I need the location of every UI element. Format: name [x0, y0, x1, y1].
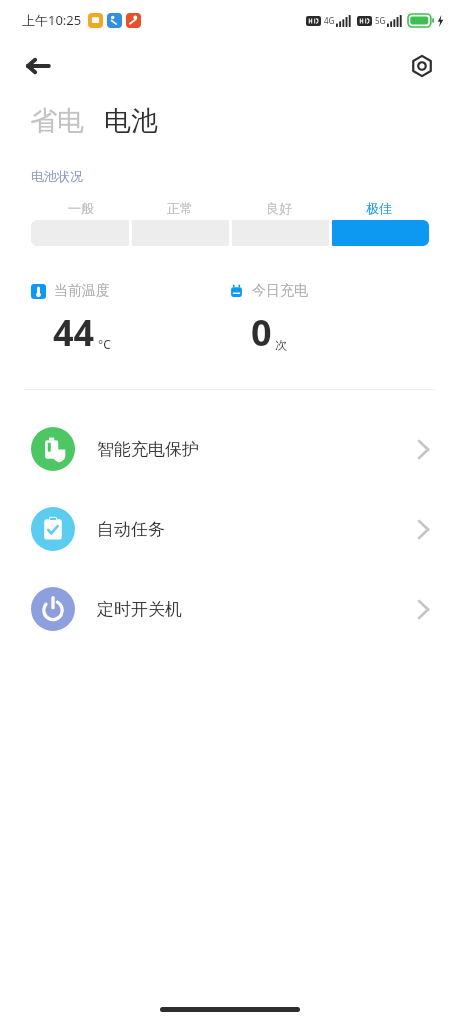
- staticText: °C: [98, 336, 111, 352]
- staticText: 44: [53, 308, 95, 357]
- button[interactable]: [332, 220, 429, 246]
- staticText: 4G: [324, 15, 335, 26]
- button[interactable]: 自动任务: [0, 489, 460, 569]
- staticText: 次: [275, 337, 287, 352]
- staticText: 电池状况: [31, 168, 83, 184]
- staticText: 极佳: [366, 200, 392, 216]
- button[interactable]: Settings: [400, 44, 444, 88]
- button[interactable]: 电池: [102, 104, 160, 138]
- staticText: 省电: [30, 104, 84, 138]
- staticText: 自动任务: [97, 519, 418, 540]
- staticText: 5G: [375, 15, 386, 26]
- staticText: 电池: [104, 104, 158, 138]
- staticText: 正常: [167, 200, 193, 216]
- staticText: 今日充电: [252, 282, 308, 300]
- button[interactable]: 定时开关机: [0, 569, 460, 649]
- staticText: 良好: [266, 200, 292, 216]
- staticText: 0: [251, 308, 272, 357]
- staticText: 当前温度: [54, 282, 110, 300]
- button[interactable]: 省电: [28, 104, 86, 138]
- button[interactable]: Back: [16, 44, 60, 88]
- button[interactable]: 智能充电保护: [0, 409, 460, 489]
- staticText: 一般: [68, 200, 94, 216]
- staticText: 智能充电保护: [97, 439, 418, 460]
- staticText: 定时开关机: [97, 599, 418, 620]
- staticText: 上午10:25: [22, 11, 82, 29]
